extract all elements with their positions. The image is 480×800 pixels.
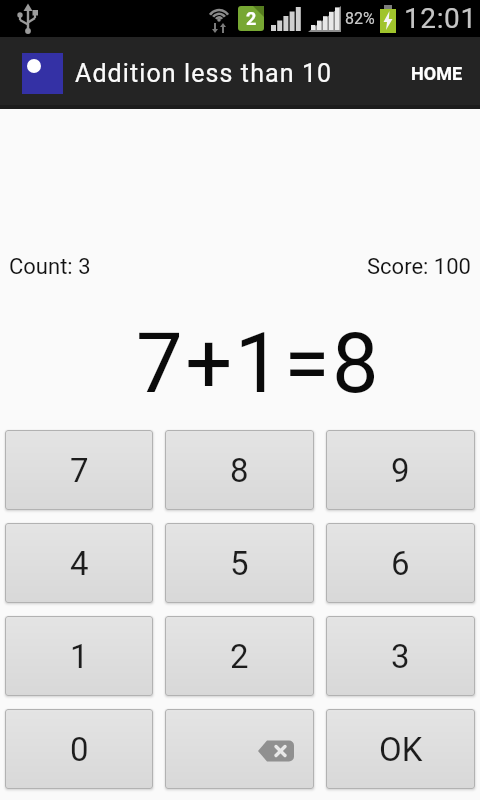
button[interactable]: 1 xyxy=(5,616,153,696)
staticText: 2 xyxy=(230,637,249,676)
button[interactable]: OK xyxy=(326,709,475,789)
staticText: 6 xyxy=(391,544,410,583)
button[interactable]: 4 xyxy=(5,523,153,603)
staticText: 1 xyxy=(70,637,89,676)
staticText: Score: 100 xyxy=(367,254,471,280)
staticText: HOME xyxy=(411,63,463,84)
button[interactable]: 2 xyxy=(165,616,314,696)
button[interactable]: 3 xyxy=(326,616,475,696)
staticText: Count: 3 xyxy=(9,254,91,280)
staticText: OK xyxy=(379,730,423,769)
staticText: 4 xyxy=(70,544,89,583)
staticText: 3 xyxy=(391,637,410,676)
staticText: 0 xyxy=(70,730,89,769)
button[interactable]: HOME xyxy=(405,57,469,90)
button[interactable]: 0 xyxy=(5,709,153,789)
staticText: 12:01 xyxy=(404,2,477,35)
button[interactable]: 7 xyxy=(5,430,153,510)
staticText: 82% xyxy=(345,9,375,28)
staticText: 5 xyxy=(230,544,249,583)
staticText: 9 xyxy=(391,451,410,490)
button[interactable]: 9 xyxy=(326,430,475,510)
button[interactable]: 6 xyxy=(326,523,475,603)
staticText: Addition less than 10 xyxy=(75,59,333,88)
button[interactable] xyxy=(165,709,314,789)
staticText: 7+1=8 xyxy=(136,315,382,412)
staticText: 2 xyxy=(246,8,257,29)
button[interactable]: 5 xyxy=(165,523,314,603)
staticText: 7 xyxy=(70,451,89,490)
staticText: 8 xyxy=(230,451,249,490)
button[interactable]: 8 xyxy=(165,430,314,510)
